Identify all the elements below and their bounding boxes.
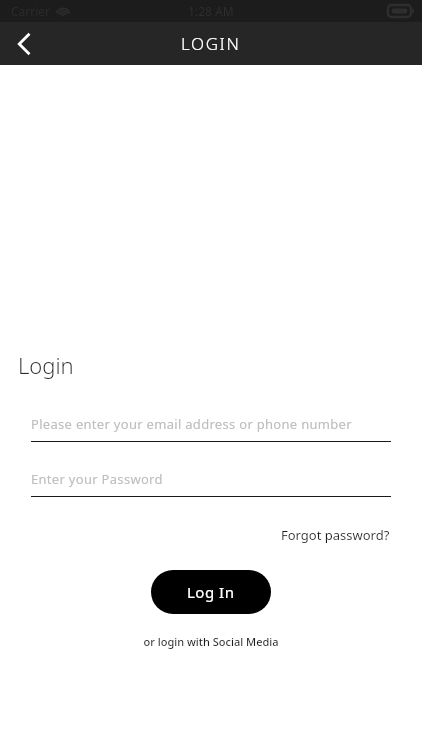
button[interactable]: Please enter your email address or phone…	[31, 415, 391, 442]
button[interactable]: or login with Social Media	[139, 632, 283, 651]
staticText: Carrier	[11, 3, 51, 19]
staticText: Please enter your email address or phone…	[31, 415, 352, 433]
button[interactable]: Enter your Password	[31, 470, 391, 497]
staticText: Forgot password?	[281, 526, 390, 544]
staticText: or login with Social Media	[143, 634, 279, 649]
staticText: LOGIN	[181, 32, 241, 55]
button[interactable]: Back	[0, 22, 48, 65]
button[interactable]: Log In	[151, 570, 271, 614]
button[interactable]: Forgot password?	[279, 524, 392, 546]
staticText: Login	[18, 350, 74, 380]
staticText: 1:28 AM	[188, 3, 234, 19]
staticText: Log In	[187, 582, 235, 602]
staticText: Enter your Password	[31, 470, 163, 488]
